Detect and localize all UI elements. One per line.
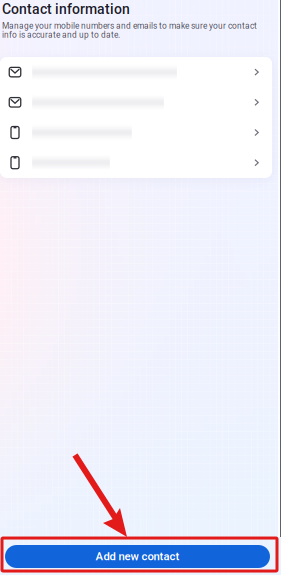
button[interactable]: Mobile number 1 xyxy=(0,117,272,148)
button[interactable]: Mobile number 2 xyxy=(0,148,272,178)
button[interactable]: Email address 2 xyxy=(0,87,272,117)
staticText: info is accurate and up to date. xyxy=(2,30,120,40)
staticText: Manage your mobile numbers and emails to… xyxy=(2,21,257,31)
button[interactable]: Add new contact xyxy=(5,545,270,568)
staticText: Add new contact xyxy=(95,550,179,563)
button[interactable]: Email address 1 xyxy=(0,57,272,87)
staticText: Contact information xyxy=(2,1,130,17)
